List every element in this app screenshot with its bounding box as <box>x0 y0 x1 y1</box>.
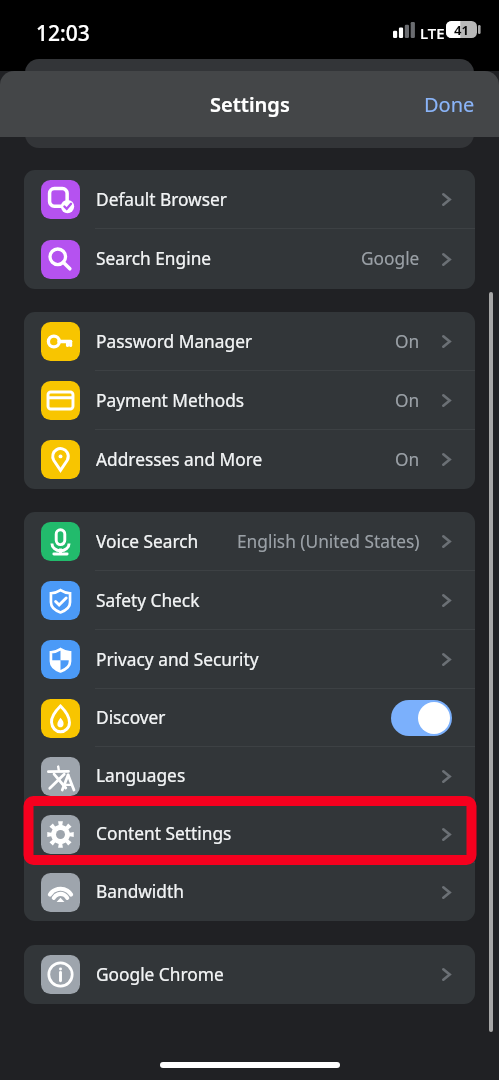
button[interactable]: Discover <box>24 689 475 747</box>
staticText: English (United States) <box>237 530 420 554</box>
button[interactable]: Privacy and Security <box>24 630 475 689</box>
staticText: Discover <box>96 706 166 730</box>
button[interactable]: Default Browser <box>24 170 475 229</box>
staticText: Privacy and Security <box>96 648 259 672</box>
staticText: Password Manager <box>96 330 253 354</box>
button[interactable]: Voice Search <box>24 512 475 571</box>
staticText: Languages <box>96 764 186 788</box>
button[interactable]: Bandwidth <box>24 863 475 921</box>
button[interactable]: Google Chrome <box>24 945 475 1004</box>
staticText: Search Engine <box>96 247 212 271</box>
button[interactable]: Discover toggle <box>391 700 452 736</box>
button[interactable]: Done <box>400 79 499 130</box>
button[interactable]: Password Manager <box>24 312 475 371</box>
staticText: Google Chrome <box>96 963 224 987</box>
staticText: Bandwidth <box>96 880 184 904</box>
staticText: On <box>395 448 420 472</box>
staticText: Content Settings <box>96 822 232 846</box>
staticText: Safety Check <box>96 589 200 613</box>
staticText: Voice Search <box>96 530 199 554</box>
staticText: 41 <box>454 21 469 38</box>
staticText: On <box>395 330 420 354</box>
button[interactable]: Addresses and More <box>24 430 475 489</box>
button[interactable]: Payment Methods <box>24 371 475 430</box>
staticText: Payment Methods <box>96 389 245 413</box>
button[interactable]: Search Engine <box>24 229 475 289</box>
staticText: 12:03 <box>36 19 90 48</box>
button[interactable]: Safety Check <box>24 571 475 630</box>
staticText: Done <box>424 91 475 118</box>
button[interactable]: Languages <box>24 747 475 805</box>
staticText: Default Browser <box>96 188 227 212</box>
staticText: On <box>395 389 420 413</box>
button[interactable]: Content Settings <box>24 805 475 863</box>
staticText: Addresses and More <box>96 448 263 472</box>
staticText: LTE <box>420 23 445 43</box>
staticText: Settings <box>210 91 290 118</box>
staticText: Google <box>361 247 420 271</box>
